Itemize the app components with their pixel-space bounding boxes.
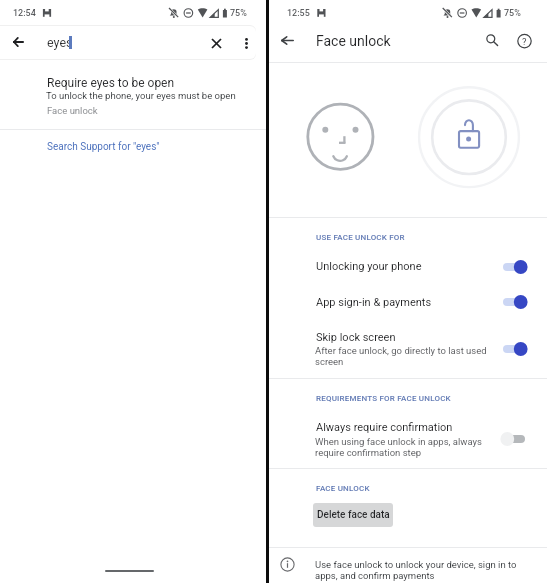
button[interactable]: Back: [4, 30, 31, 57]
button[interactable]: More options: [234, 31, 258, 55]
button[interactable]: [269, 248, 547, 284]
staticText: eyes: [47, 35, 73, 50]
button[interactable]: [0, 68, 266, 124]
button[interactable]: On: [496, 294, 532, 310]
staticText: USE FACE UNLOCK FOR: [316, 233, 405, 242]
button[interactable]: Off: [496, 431, 532, 447]
staticText: After face unlock, go directly to last u…: [315, 345, 491, 367]
staticText: 12:54: [13, 8, 36, 19]
staticText: 75%: [504, 8, 521, 19]
staticText: Skip lock screen: [316, 331, 396, 344]
staticText: Use face unlock to unlock your device, s…: [315, 559, 521, 581]
button[interactable]: Help: [511, 27, 537, 53]
staticText: REQUIREMENTS FOR FACE UNLOCK: [316, 394, 451, 403]
staticText: App sign-in & payments: [316, 296, 432, 309]
button[interactable]: On: [496, 259, 532, 275]
staticText: Face unlock: [47, 105, 98, 116]
staticText: To unlock the phone, your eyes must be o…: [46, 90, 236, 101]
button[interactable]: Back: [273, 27, 301, 55]
staticText: Unlocking your phone: [316, 260, 422, 273]
staticText: Require eyes to be open: [47, 76, 175, 90]
button[interactable]: [269, 320, 547, 376]
staticText: Always require confirmation: [316, 421, 453, 434]
staticText: 12:55: [287, 8, 310, 19]
staticText: Search Support for "eyes": [47, 141, 160, 153]
staticText: FACE UNLOCK: [316, 484, 370, 493]
button[interactable]: [269, 411, 547, 467]
button[interactable]: [0, 131, 266, 163]
button[interactable]: [269, 284, 547, 319]
button[interactable]: On: [496, 341, 532, 357]
button[interactable]: Clear search: [204, 31, 228, 55]
staticText: ?: [522, 36, 527, 47]
staticText: Face unlock: [316, 33, 391, 49]
staticText: When using face unlock in apps, always r…: [315, 436, 491, 458]
staticText: Delete face data: [317, 509, 390, 521]
staticText: 75%: [230, 8, 247, 19]
button[interactable]: Delete face data: [313, 503, 393, 527]
button[interactable]: Search: [479, 27, 505, 53]
